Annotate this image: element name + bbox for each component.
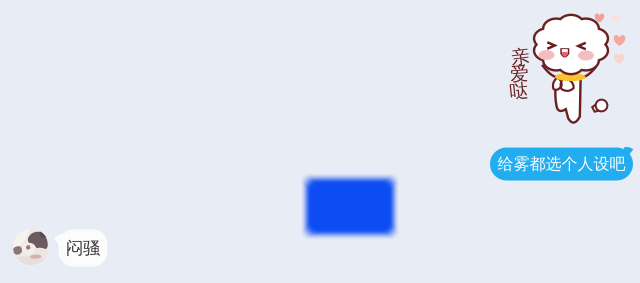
staticText: 闷骚 bbox=[66, 237, 100, 259]
staticText: 哒 bbox=[509, 79, 528, 102]
staticText: 爱 bbox=[510, 62, 529, 85]
staticText: 亲 bbox=[511, 45, 530, 68]
button[interactable]: 给雾都选个人设吧 bbox=[490, 146, 640, 181]
button[interactable]: Avatar bbox=[13, 229, 49, 265]
button[interactable]: 闷骚 bbox=[52, 229, 107, 266]
staticText: 给雾都选个人设吧 bbox=[497, 154, 625, 174]
